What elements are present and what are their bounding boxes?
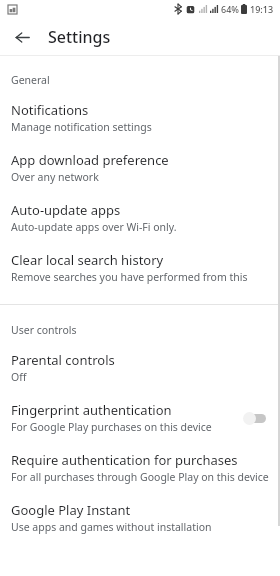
button[interactable]: Google Play Instant (0, 487, 280, 537)
staticText: For Google Play purchases on this device (11, 420, 212, 434)
staticText: Over any network (11, 170, 99, 184)
staticText: Settings (48, 26, 111, 48)
staticText: User controls (11, 323, 77, 337)
button[interactable]: Parental controls (0, 337, 280, 387)
button[interactable]: App download preference (0, 137, 280, 187)
button[interactable]: Require authentication for purchases (0, 437, 280, 487)
staticText: Fingerprint authentication (11, 401, 172, 419)
staticText: Google Play Instant (11, 501, 131, 519)
staticText: Auto-update apps (11, 201, 121, 219)
button[interactable]: Fingerprint authentication toggle (238, 407, 272, 429)
staticText: Notifications (11, 101, 89, 119)
staticText: Auto-update apps over Wi-Fi only. (11, 220, 177, 234)
staticText: 64% (221, 3, 239, 15)
button[interactable]: Notifications (0, 87, 280, 137)
staticText: Clear local search history (11, 251, 164, 269)
button[interactable]: Auto-update apps (0, 187, 280, 237)
staticText: Manage notification settings (11, 120, 152, 134)
staticText: Use apps and games without installation (11, 520, 212, 534)
staticText: 19:13 (250, 3, 274, 15)
button[interactable]: Clear local search history (0, 237, 280, 287)
button[interactable]: Fingerprint authentication (0, 387, 280, 437)
button[interactable]: Back (6, 21, 38, 53)
staticText: Require authentication for purchases (11, 451, 238, 469)
staticText: General (11, 73, 50, 87)
staticText: App download preference (11, 151, 169, 169)
staticText: Remove searches you have performed from … (11, 270, 272, 284)
staticText: Parental controls (11, 351, 115, 369)
staticText: For all purchases through Google Play on… (11, 470, 269, 484)
staticText: Off (11, 370, 27, 384)
